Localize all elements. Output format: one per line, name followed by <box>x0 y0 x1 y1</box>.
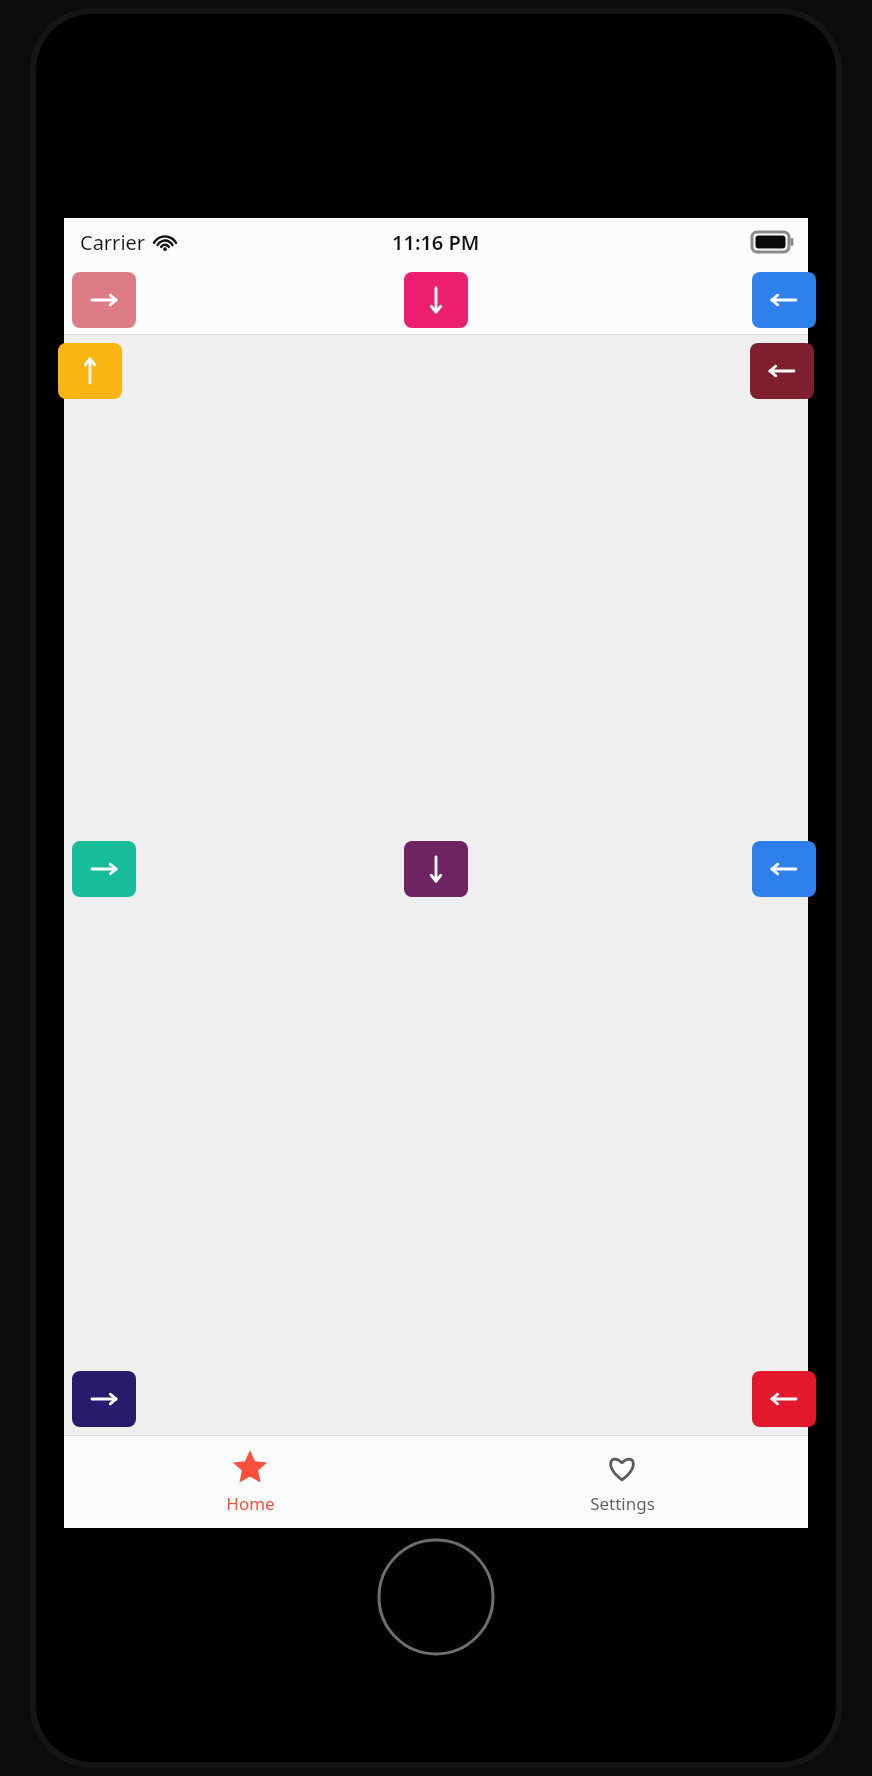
staticText: 11:16 PM <box>392 229 480 256</box>
button[interactable]: Down <box>404 272 468 328</box>
staticText: Settings <box>590 1492 655 1515</box>
button[interactable]: Forward <box>72 1371 136 1427</box>
staticText: Home <box>226 1492 275 1515</box>
button[interactable]: Home <box>64 1436 436 1528</box>
button[interactable]: Forward <box>72 272 136 328</box>
button[interactable]: Back <box>750 343 814 399</box>
staticText: Carrier <box>80 229 146 256</box>
button[interactable]: Up <box>58 343 122 399</box>
button[interactable]: Forward <box>72 841 136 897</box>
button[interactable]: Back <box>752 1371 816 1427</box>
button[interactable]: Back <box>752 841 816 897</box>
button[interactable]: Settings <box>436 1436 808 1528</box>
button[interactable]: Down <box>404 841 468 897</box>
button[interactable]: Back <box>752 272 816 328</box>
